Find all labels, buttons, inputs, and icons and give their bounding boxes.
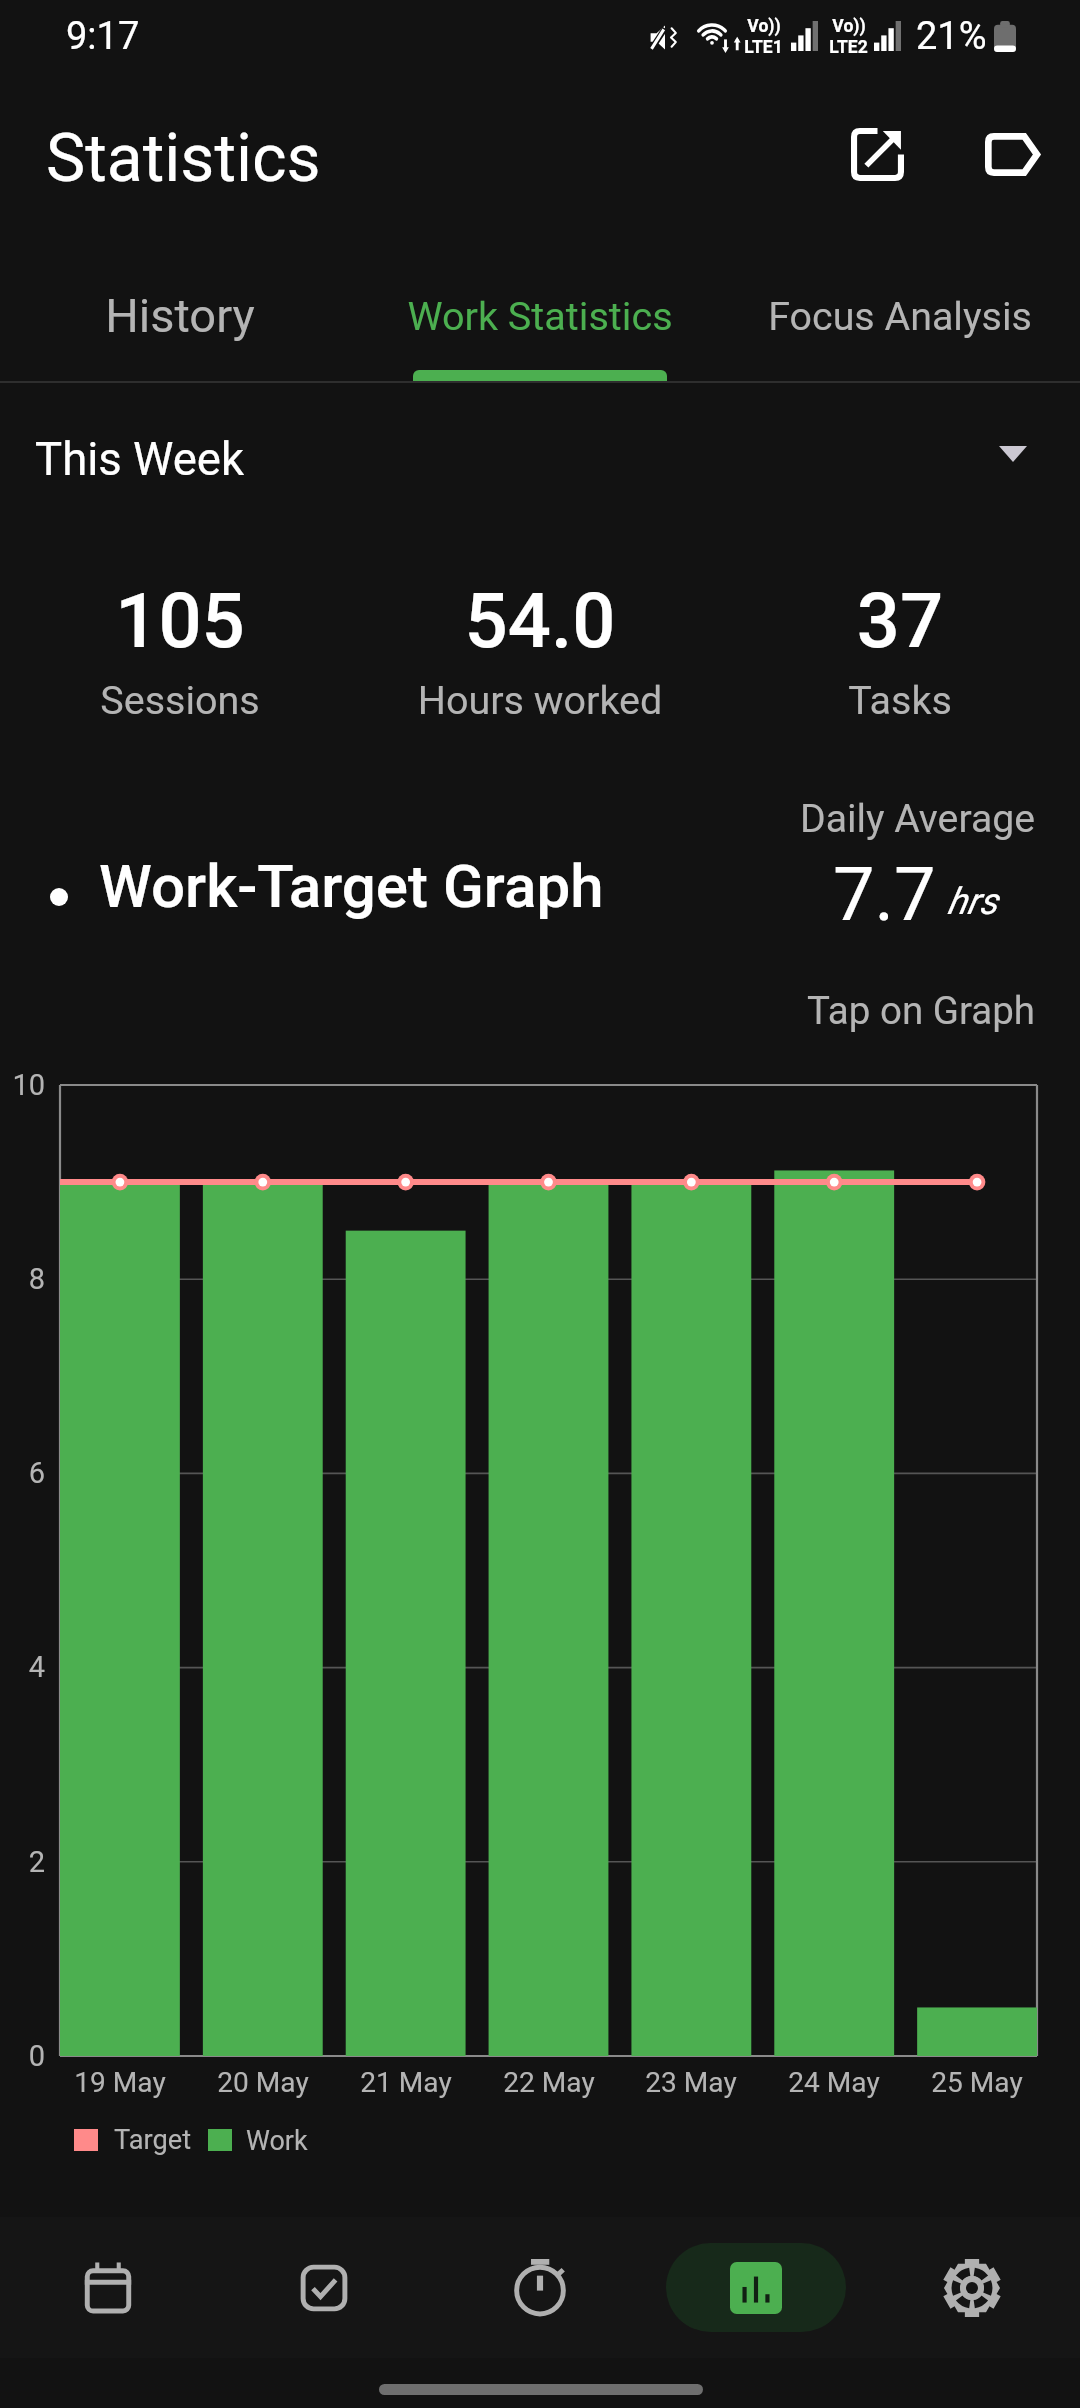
staticText: 0	[0, 2039, 45, 2073]
button[interactable]: Statistics	[648, 2217, 864, 2358]
staticText: 37	[700, 576, 1080, 665]
staticText: 25 May	[877, 2066, 1077, 2099]
staticText: 54.0	[340, 576, 740, 665]
staticText: Tap on Graph	[435, 988, 1035, 1033]
staticText: 23 May	[591, 2066, 791, 2099]
staticText: Focus Analysis	[700, 293, 1080, 339]
staticText: hrs	[947, 880, 998, 923]
staticText: Vo))	[832, 16, 866, 37]
button[interactable]: Settings	[864, 2217, 1080, 2358]
staticText: Vo))	[747, 16, 781, 37]
staticText: 4	[0, 1650, 45, 1684]
staticText: 21 May	[306, 2066, 506, 2099]
staticText: Sessions	[0, 677, 380, 723]
staticText: 20 May	[163, 2066, 363, 2099]
button[interactable]: Label	[963, 104, 1063, 204]
button[interactable]: Timer	[432, 2217, 648, 2358]
staticText: 2	[0, 1845, 45, 1879]
button[interactable]	[720, 258, 1080, 381]
staticText: 21%	[916, 14, 987, 59]
button[interactable]: Open in new window	[827, 104, 927, 204]
button[interactable]	[360, 258, 720, 381]
staticText: This Week	[35, 433, 245, 486]
button[interactable]: Tasks	[216, 2217, 432, 2358]
staticText: 19 May	[20, 2066, 220, 2099]
staticText: 10	[0, 1068, 45, 1102]
staticText: Work-Target Graph	[99, 851, 604, 921]
staticText: Daily Average	[435, 796, 1035, 842]
staticText: 105	[0, 576, 380, 665]
staticText: Work Statistics	[340, 293, 740, 339]
staticText: 22 May	[449, 2066, 649, 2099]
staticText: LTE2	[829, 37, 868, 58]
button[interactable]	[0, 1050, 1080, 2110]
staticText: 24 May	[734, 2066, 934, 2099]
staticText: 7.7	[833, 851, 936, 938]
staticText: Target	[114, 2124, 192, 2156]
staticText: 6	[0, 1456, 45, 1490]
button[interactable]	[0, 400, 1080, 512]
staticText: Statistics	[46, 120, 321, 197]
staticText: LTE1	[744, 37, 783, 58]
button[interactable]: Calendar	[0, 2217, 216, 2358]
staticText: History	[0, 288, 380, 343]
button[interactable]	[0, 258, 360, 381]
staticText: Tasks	[700, 677, 1080, 723]
staticText: 8	[0, 1262, 45, 1296]
staticText: Work	[246, 2125, 308, 2157]
staticText: 9:17	[66, 14, 140, 59]
staticText: Hours worked	[340, 677, 740, 723]
